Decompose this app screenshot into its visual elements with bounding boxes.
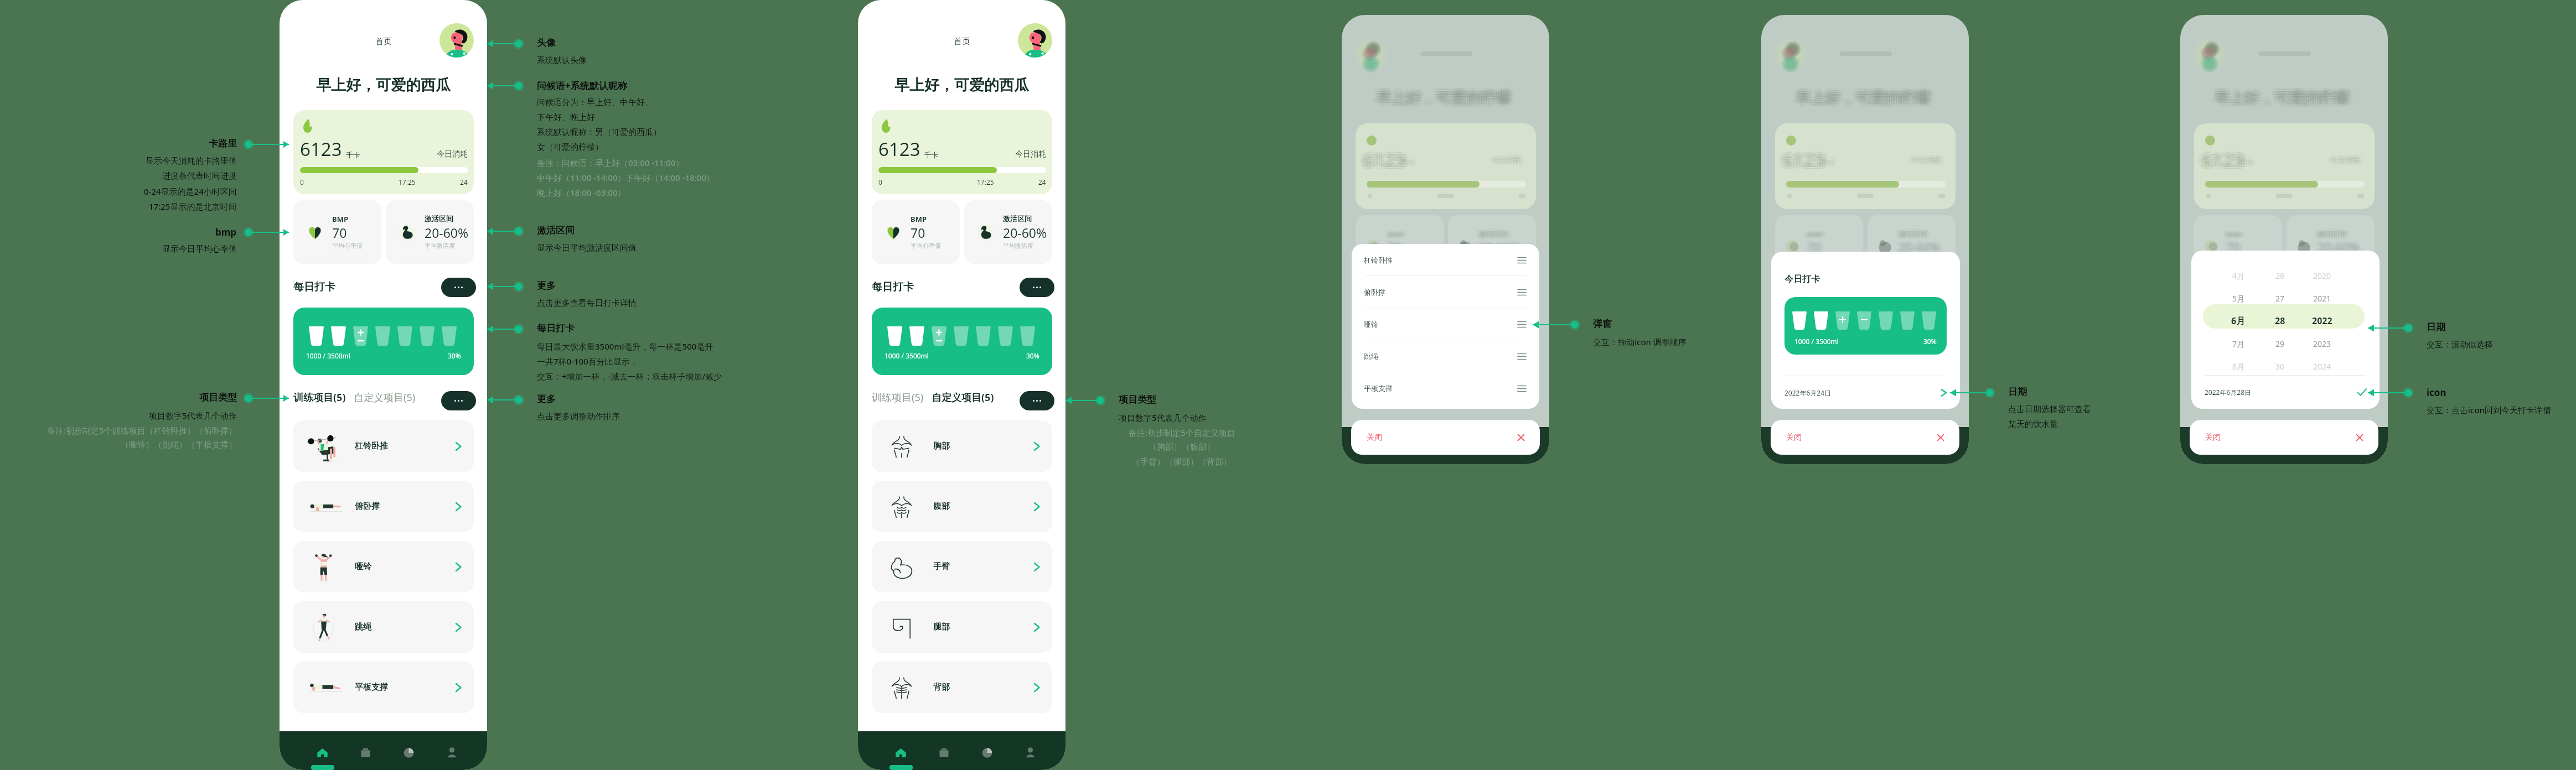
- staticText: 今日消耗: [2331, 154, 2362, 164]
- button[interactable]: 关闭: [1351, 420, 1540, 455]
- button[interactable]: Cup 3: [353, 326, 368, 346]
- button[interactable]: 6123: [293, 110, 474, 194]
- button[interactable]: 俯卧撑: [293, 481, 474, 532]
- button[interactable]: 2022年6月24日: [1771, 376, 1960, 409]
- button[interactable]: 29: [2258, 335, 2302, 352]
- button[interactable]: Cup 4: [1857, 311, 1871, 330]
- button[interactable]: 2021: [2300, 290, 2344, 306]
- button[interactable]: 胸部: [872, 420, 1052, 472]
- button[interactable]: Cup 2: [331, 326, 346, 346]
- button[interactable]: Home: [890, 742, 911, 763]
- button[interactable]: 训练项目(5): [293, 391, 346, 404]
- button[interactable]: Cup 7: [1020, 326, 1035, 346]
- staticText: 更多: [537, 280, 556, 292]
- button[interactable]: More: [441, 391, 476, 410]
- button[interactable]: 2024: [2300, 358, 2344, 374]
- button[interactable]: Plan: [355, 742, 376, 763]
- button[interactable]: More: [441, 278, 476, 297]
- button[interactable]: Cup 1: [1792, 311, 1807, 330]
- button[interactable]: 训练项目(5): [872, 391, 924, 404]
- button[interactable]: Plan: [933, 742, 954, 763]
- button[interactable]: 自定义项目(5): [932, 391, 994, 404]
- button[interactable]: Cup 5: [397, 326, 412, 346]
- button[interactable]: 4月: [2216, 267, 2261, 284]
- button[interactable]: Profile: [439, 23, 474, 58]
- button[interactable]: Cup 4: [375, 326, 390, 346]
- staticText: 24: [460, 178, 468, 186]
- button[interactable]: Cup 5: [976, 326, 991, 346]
- button[interactable]: Cup 6: [998, 326, 1013, 346]
- button[interactable]: Cup 2: [1814, 311, 1828, 330]
- button[interactable]: 俯卧撑: [1352, 276, 1539, 308]
- button[interactable]: 跳绳: [1352, 340, 1539, 372]
- button[interactable]: 7月: [2216, 335, 2261, 352]
- button[interactable]: Cup 2: [909, 326, 924, 346]
- button[interactable]: Cup 3: [932, 326, 946, 346]
- button[interactable]: 27: [2258, 290, 2302, 306]
- button[interactable]: Cup 5: [1879, 311, 1893, 330]
- button[interactable]: Cup 1: [872, 308, 1052, 375]
- button[interactable]: BMP: [293, 200, 381, 264]
- staticText: 千卡: [1819, 159, 1833, 168]
- button[interactable]: 激活区间: [386, 200, 474, 264]
- staticText: 平均心率值: [1386, 255, 1416, 263]
- button[interactable]: 26: [2258, 267, 2302, 284]
- staticText: 激活区间: [1476, 230, 1504, 238]
- button[interactable]: Cup 7: [1922, 311, 1936, 330]
- button[interactable]: 手臂: [872, 541, 1052, 592]
- button[interactable]: 哑铃: [1352, 308, 1539, 340]
- button[interactable]: 8月: [2216, 358, 2261, 374]
- button[interactable]: 平板支撑: [293, 662, 474, 713]
- button[interactable]: Cup 3: [1835, 311, 1850, 330]
- button[interactable]: 6123: [872, 110, 1052, 194]
- button[interactable]: 腿部: [872, 601, 1052, 653]
- button[interactable]: 28: [2258, 313, 2302, 329]
- staticText: 交互：拖动icon 调整顺序: [1593, 336, 1687, 347]
- button[interactable]: Stats: [976, 742, 997, 763]
- button[interactable]: Cup 6: [420, 326, 434, 346]
- button[interactable]: 哑铃: [293, 541, 474, 592]
- button[interactable]: 平板支撑: [1352, 372, 1539, 404]
- button[interactable]: 关闭: [1771, 420, 1959, 455]
- staticText: 哑铃: [1364, 320, 1378, 329]
- button[interactable]: 6月: [2216, 313, 2261, 329]
- button[interactable]: 自定义项目(5): [354, 391, 416, 404]
- button[interactable]: 关闭: [2190, 420, 2378, 455]
- staticText: 0-24显示的是24小时区间: [144, 186, 237, 197]
- button[interactable]: Profile: [1020, 742, 1041, 763]
- staticText: 平均心率值: [1389, 253, 1420, 261]
- button[interactable]: More: [1020, 391, 1054, 410]
- button[interactable]: 30: [2258, 358, 2302, 374]
- button[interactable]: Stats: [398, 742, 419, 763]
- button[interactable]: Cup 7: [442, 326, 457, 346]
- button[interactable]: Cup 1: [293, 308, 474, 375]
- button[interactable]: 2022年6月28日: [2191, 376, 2380, 409]
- button[interactable]: Cup 6: [1900, 311, 1915, 330]
- button[interactable]: Cup 1: [887, 326, 902, 346]
- button[interactable]: 腹部: [872, 481, 1052, 532]
- button[interactable]: Cup 4: [954, 326, 969, 346]
- button[interactable]: 5月: [2216, 290, 2261, 306]
- button[interactable]: 2020: [2300, 267, 2344, 284]
- button[interactable]: Home: [312, 742, 333, 763]
- staticText: 千卡: [1822, 156, 1837, 165]
- button[interactable]: 杠铃卧推: [293, 420, 474, 472]
- button[interactable]: 2023: [2300, 335, 2344, 352]
- button[interactable]: Cup 1: [1784, 297, 1947, 355]
- staticText: 项目类型: [199, 392, 237, 403]
- button[interactable]: More: [1020, 278, 1054, 297]
- button[interactable]: Cup 1: [309, 326, 324, 346]
- button[interactable]: 跳绳: [293, 601, 474, 653]
- button[interactable]: 激活区间: [964, 200, 1052, 264]
- button[interactable]: Profile: [1018, 23, 1052, 58]
- staticText: 早上好，可爱的柠檬: [2217, 89, 2351, 107]
- button[interactable]: 2022: [2300, 313, 2344, 329]
- staticText: 70: [2223, 238, 2237, 255]
- staticText: BMP: [1388, 230, 1404, 240]
- button[interactable]: 背部: [872, 662, 1052, 713]
- button[interactable]: BMP: [872, 200, 960, 264]
- button[interactable]: 杠铃卧推: [1352, 244, 1539, 276]
- button[interactable]: Profile: [441, 742, 462, 763]
